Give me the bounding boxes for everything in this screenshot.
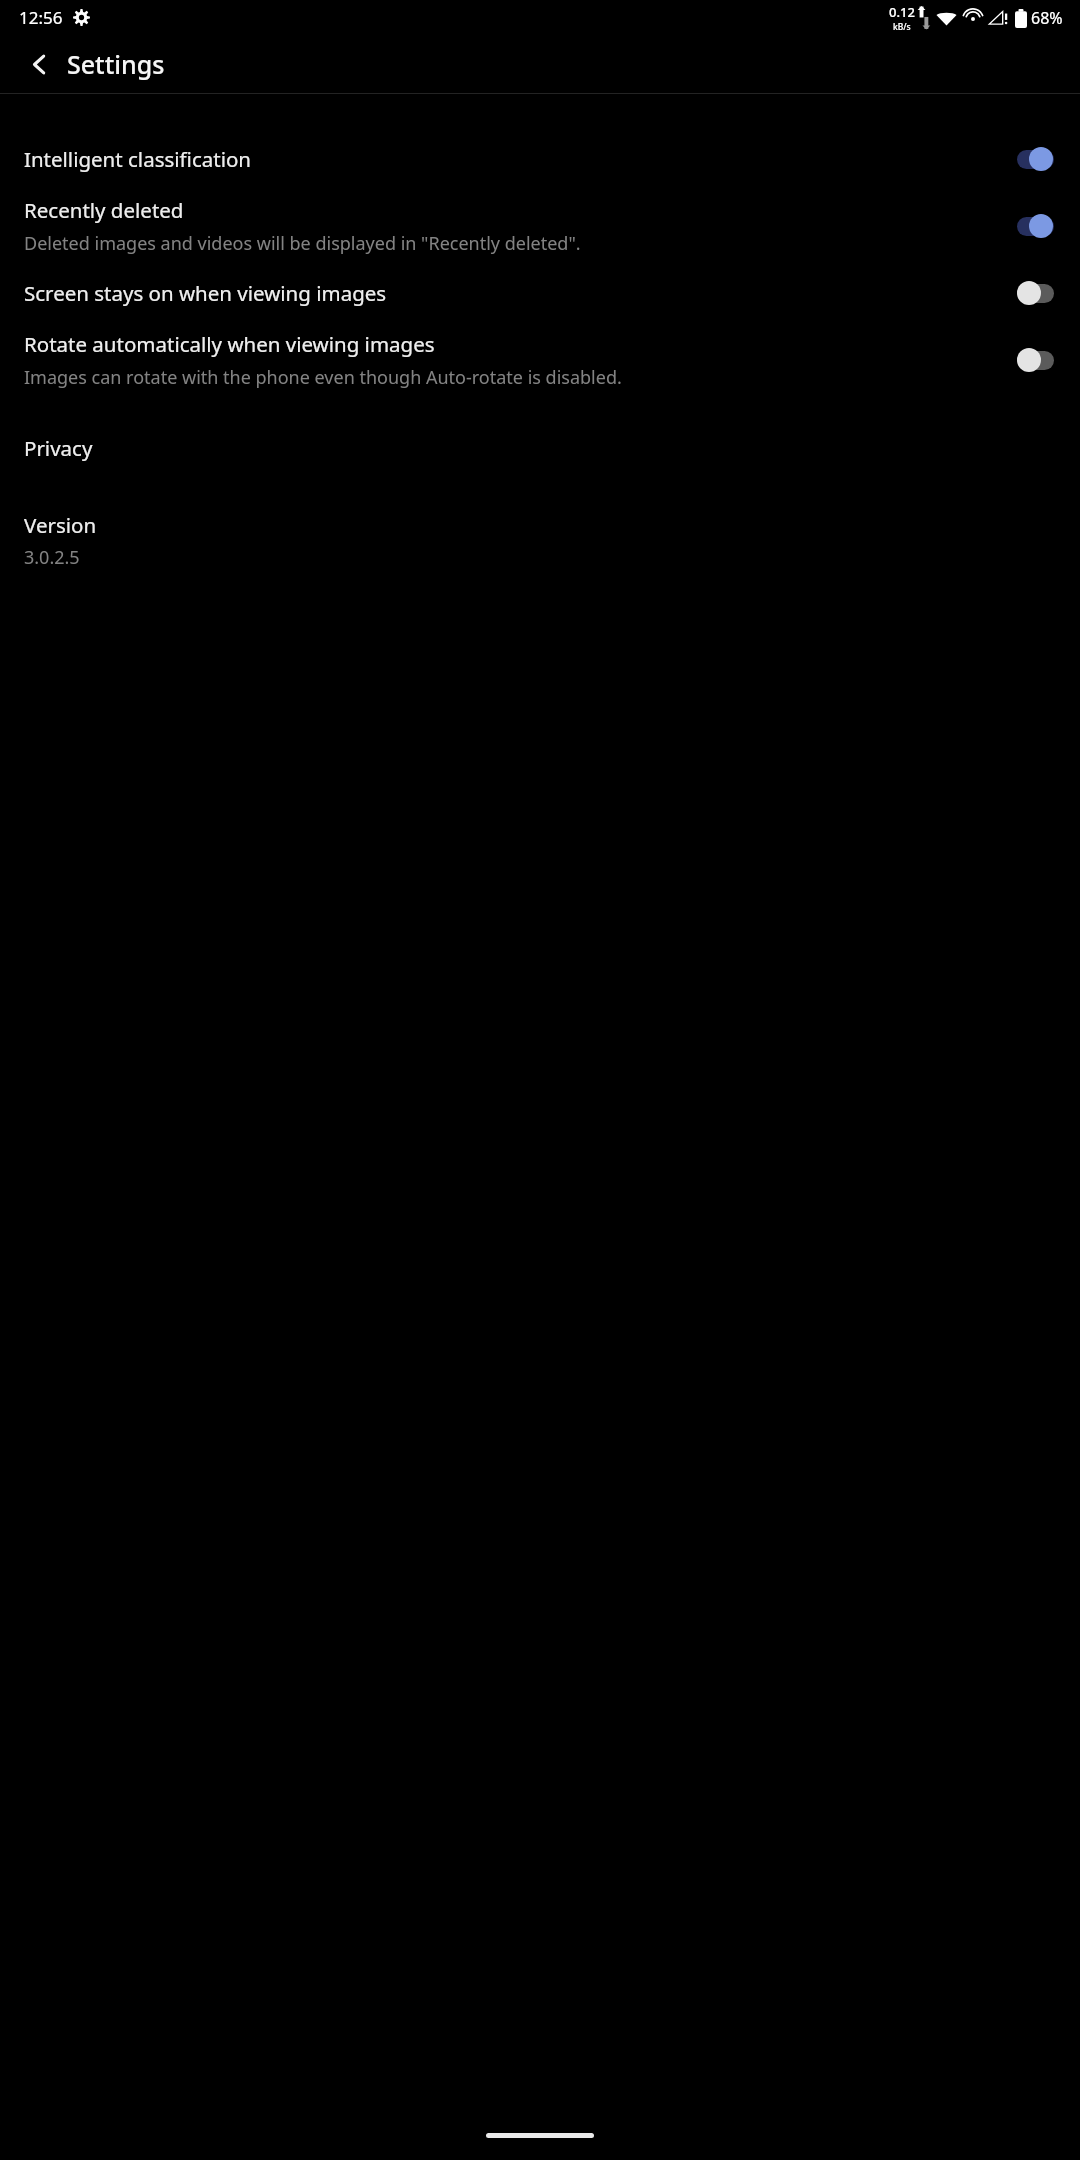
- staticText: Screen stays on when viewing images: [24, 279, 387, 307]
- button[interactable]: Off: [1012, 343, 1058, 377]
- button[interactable]: Intelligent classification: [0, 132, 1080, 186]
- button[interactable]: Back: [17, 42, 61, 86]
- staticText: Deleted images and videos will be displa…: [24, 231, 581, 256]
- staticText: Images can rotate with the phone even th…: [24, 365, 622, 390]
- button[interactable]: On: [1012, 142, 1058, 176]
- staticText: kB/s: [893, 21, 911, 33]
- button[interactable]: Privacy: [0, 426, 1080, 470]
- button[interactable]: Off: [1012, 276, 1058, 310]
- staticText: Recently deleted: [24, 196, 184, 224]
- staticText: Rotate automatically when viewing images: [24, 330, 435, 358]
- staticText: Version: [24, 511, 97, 539]
- staticText: 0.12: [889, 3, 915, 21]
- button[interactable]: Recently deleted: [0, 186, 1080, 266]
- staticText: 12:56: [19, 6, 63, 29]
- button[interactable]: Version: [0, 507, 1080, 576]
- staticText: Settings: [67, 47, 165, 81]
- staticText: 68%: [1031, 7, 1063, 29]
- button[interactable]: On: [1012, 209, 1058, 243]
- staticText: Intelligent classification: [24, 145, 252, 173]
- button[interactable]: Screen stays on when viewing images: [0, 266, 1080, 320]
- button[interactable]: Rotate automatically when viewing images: [0, 320, 1080, 400]
- staticText: 3.0.2.5: [24, 545, 80, 570]
- staticText: Privacy: [24, 434, 93, 462]
